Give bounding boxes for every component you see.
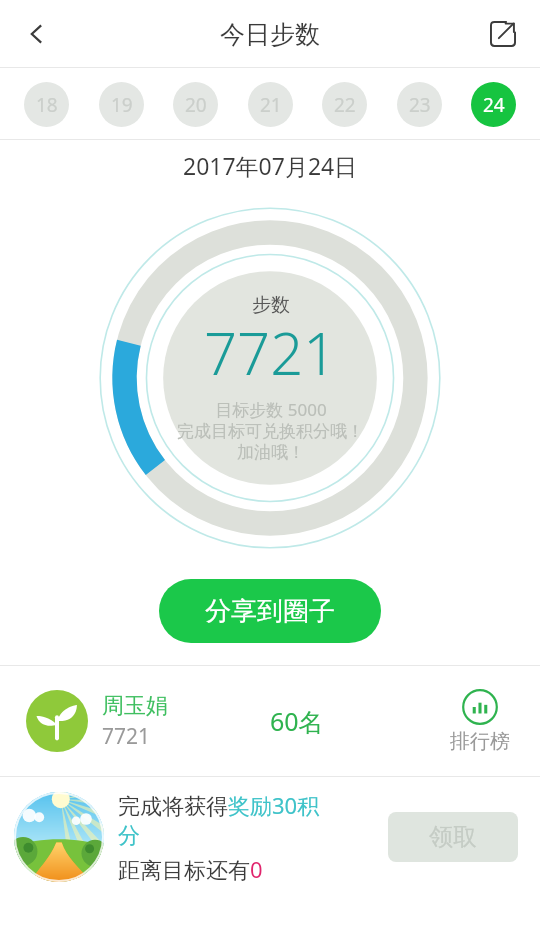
button[interactable]: 20 xyxy=(173,82,218,127)
staticText: 完成将获得奖励30积分 xyxy=(118,790,328,850)
button[interactable]: 22 xyxy=(322,82,367,127)
button[interactable]: 19 xyxy=(99,82,144,127)
button[interactable]: 排行榜 xyxy=(442,689,518,754)
staticText: 19 xyxy=(111,92,133,118)
staticText: 23 xyxy=(409,92,431,118)
staticText: 完成目标可兑换积分哦！ xyxy=(177,421,364,442)
staticText: 步数 xyxy=(252,293,290,317)
button[interactable]: 24 xyxy=(471,82,516,127)
staticText: 分享到圈子 xyxy=(205,595,335,628)
staticText: 22 xyxy=(334,92,356,118)
button[interactable]: 23 xyxy=(397,82,442,127)
staticText: 周玉娟 xyxy=(102,692,168,720)
button[interactable]: 领取 xyxy=(388,812,518,862)
staticText: 21 xyxy=(260,92,282,118)
button[interactable]: 21 xyxy=(248,82,293,127)
button[interactable]: 18 xyxy=(24,82,69,127)
staticText: 7721 xyxy=(102,722,151,751)
staticText: 目标步数 5000 xyxy=(215,398,327,421)
staticText: 加油哦！ xyxy=(237,442,305,463)
button[interactable]: Share xyxy=(466,0,540,68)
staticText: 20 xyxy=(185,92,207,118)
staticText: 领取 xyxy=(429,822,477,852)
staticText: 距离目标还有0 xyxy=(118,854,263,884)
button[interactable]: Back xyxy=(0,0,74,68)
staticText: 60名 xyxy=(270,704,324,738)
staticText: 18 xyxy=(36,92,58,118)
staticText: 今日步数 xyxy=(220,19,320,50)
staticText: 排行榜 xyxy=(450,729,510,754)
staticText: 2017年07月24日 xyxy=(183,150,358,181)
button[interactable]: 周玉娟 xyxy=(0,666,540,776)
staticText: 7721 xyxy=(204,313,337,392)
staticText: 24 xyxy=(483,92,505,118)
button[interactable]: 分享到圈子 xyxy=(159,579,381,643)
